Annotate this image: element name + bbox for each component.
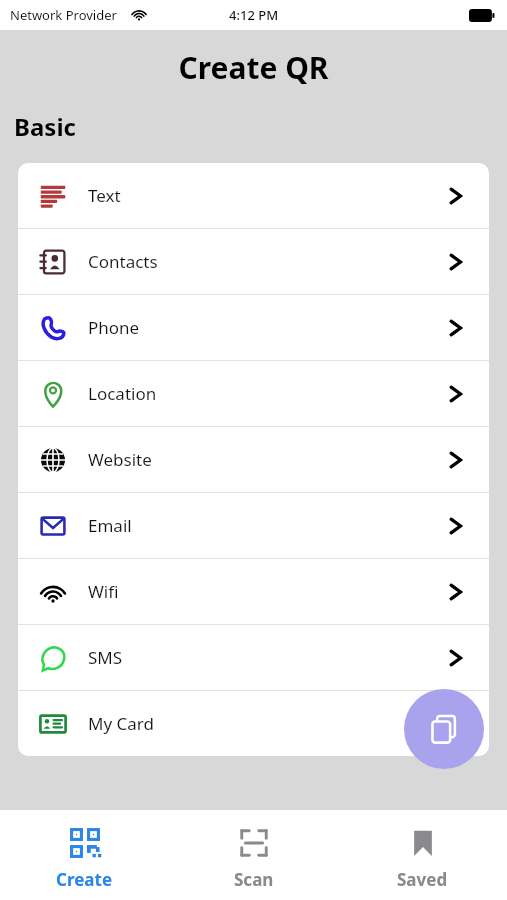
button[interactable]: SMS bbox=[18, 625, 489, 690]
button[interactable]: Copy bbox=[404, 689, 484, 769]
button[interactable]: Text bbox=[18, 163, 489, 228]
button[interactable]: My Card bbox=[18, 691, 489, 756]
staticText: Location bbox=[88, 382, 157, 405]
button[interactable]: Create bbox=[0, 810, 169, 900]
staticText: Wifi bbox=[88, 580, 119, 603]
staticText: SMS bbox=[88, 646, 123, 669]
staticText: Scan bbox=[234, 868, 274, 891]
staticText: My Card bbox=[88, 712, 154, 735]
staticText: Text bbox=[88, 184, 121, 207]
staticText: Create bbox=[56, 868, 113, 891]
button[interactable]: Saved bbox=[338, 810, 507, 900]
staticText: Email bbox=[88, 514, 132, 537]
staticText: Network Provider bbox=[10, 6, 117, 24]
button[interactable]: Scan bbox=[169, 810, 338, 900]
staticText: Saved bbox=[397, 868, 448, 891]
staticText: Create QR bbox=[0, 47, 507, 88]
button[interactable]: Contacts bbox=[18, 229, 489, 294]
button[interactable]: Location bbox=[18, 361, 489, 426]
staticText: Phone bbox=[88, 316, 140, 339]
button[interactable]: Wifi bbox=[18, 559, 489, 624]
button[interactable]: Email bbox=[18, 493, 489, 558]
button[interactable]: Website bbox=[18, 427, 489, 492]
staticText: Basic bbox=[14, 110, 76, 143]
staticText: Contacts bbox=[88, 250, 158, 273]
staticText: 4:12 PM bbox=[229, 6, 279, 24]
staticText: Website bbox=[88, 448, 152, 471]
button[interactable]: Phone bbox=[18, 295, 489, 360]
